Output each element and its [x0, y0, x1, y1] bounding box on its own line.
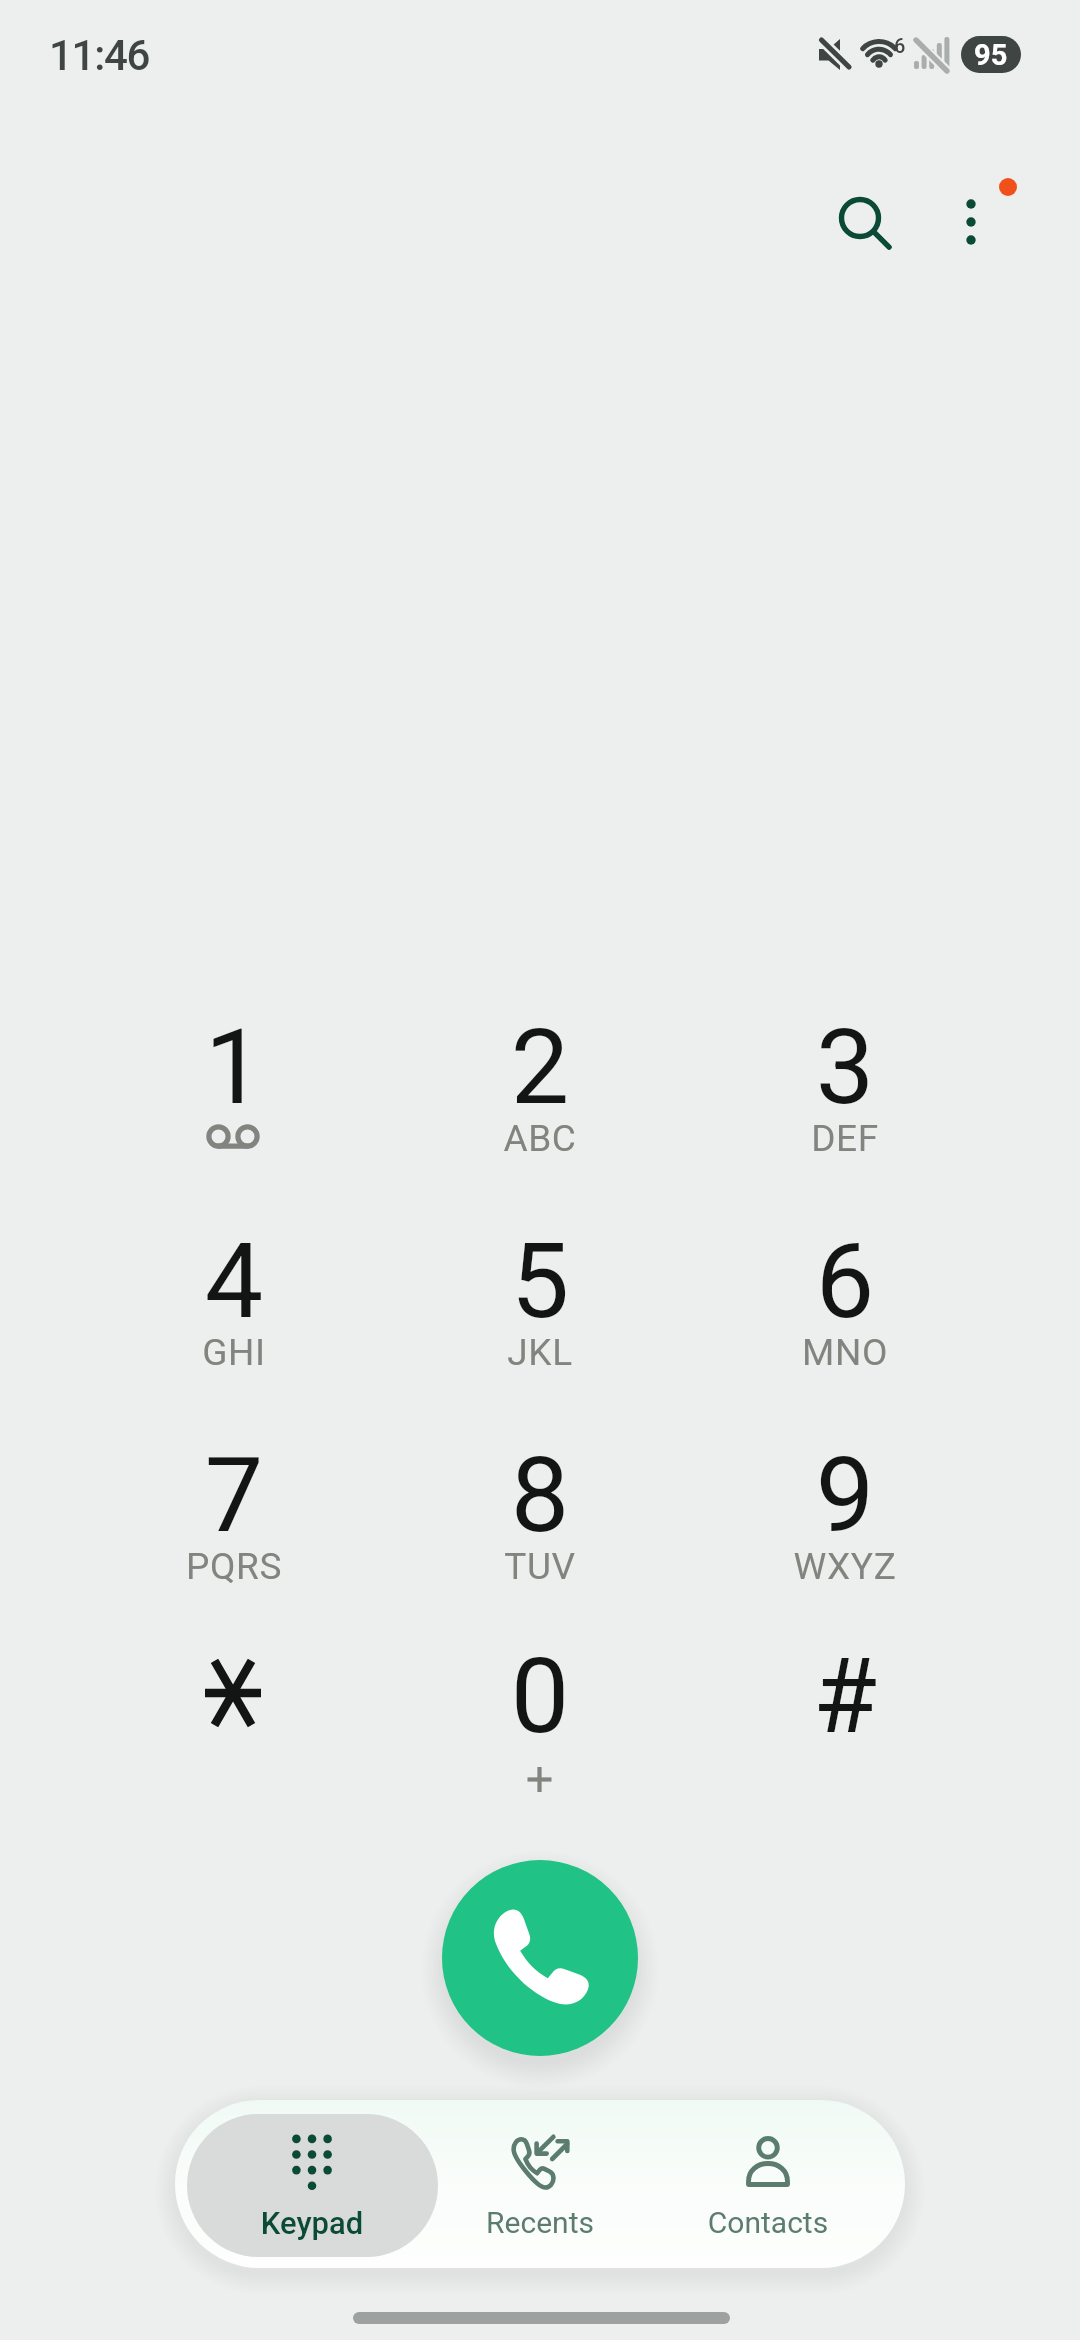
- button[interactable]: [425, 2114, 655, 2257]
- staticText: 4: [84, 1221, 384, 1343]
- staticText: 9: [695, 1435, 995, 1557]
- staticText: TUV: [390, 1545, 690, 1588]
- staticText: 6: [894, 34, 906, 57]
- button[interactable]: [653, 2114, 883, 2257]
- staticText: Contacts: [648, 2205, 888, 2240]
- staticText: 8: [390, 1435, 690, 1557]
- button[interactable]: [187, 2114, 438, 2257]
- staticText: 0: [390, 1636, 690, 1758]
- staticText: 5: [390, 1221, 690, 1343]
- button[interactable]: [84, 1415, 384, 1615]
- staticText: DEF: [695, 1117, 995, 1160]
- button[interactable]: [84, 987, 384, 1187]
- staticText: MNO: [695, 1331, 995, 1374]
- staticText: GHI: [84, 1331, 384, 1374]
- button[interactable]: [390, 987, 690, 1187]
- staticText: 7: [84, 1435, 384, 1557]
- staticText: 1: [84, 1007, 384, 1129]
- button[interactable]: Star: [84, 1616, 384, 1816]
- button[interactable]: Search: [811, 169, 909, 267]
- button[interactable]: Pound: [695, 1616, 995, 1816]
- staticText: 3: [695, 1007, 995, 1129]
- button[interactable]: [695, 987, 995, 1187]
- button[interactable]: [390, 1201, 690, 1401]
- staticText: Keypad: [192, 2205, 432, 2241]
- button[interactable]: [390, 1616, 690, 1816]
- staticText: WXYZ: [695, 1545, 995, 1588]
- button[interactable]: More options: [915, 163, 1023, 271]
- staticText: PQRS: [84, 1545, 384, 1588]
- staticText: JKL: [390, 1331, 690, 1374]
- staticText: ABC: [390, 1117, 690, 1160]
- staticText: 95: [974, 38, 1008, 72]
- button[interactable]: Call: [442, 1860, 638, 2056]
- staticText: #: [695, 1636, 995, 1758]
- staticText: 11:46: [49, 31, 150, 80]
- button[interactable]: [390, 1415, 690, 1615]
- button[interactable]: [695, 1201, 995, 1401]
- button[interactable]: [695, 1415, 995, 1615]
- button[interactable]: [84, 1201, 384, 1401]
- staticText: Recents: [420, 2205, 660, 2240]
- staticText: 6: [695, 1221, 995, 1343]
- staticText: 2: [390, 1007, 690, 1129]
